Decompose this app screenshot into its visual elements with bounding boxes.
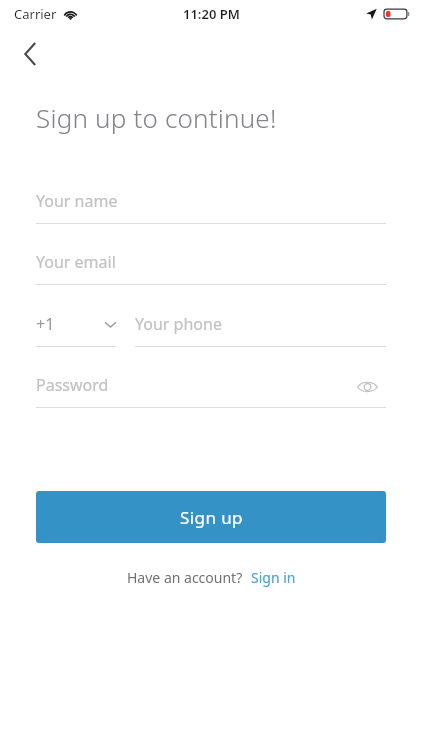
staticText: Sign up to continue! [36, 100, 277, 135]
staticText: +1 [36, 313, 55, 335]
button[interactable]: Sign up [36, 491, 386, 543]
button[interactable]: Your phone [135, 304, 386, 347]
staticText: 11:20 PM [183, 5, 240, 23]
staticText: Carrier [14, 5, 57, 23]
button[interactable]: +1 [36, 304, 116, 347]
staticText: Have an account? [127, 568, 243, 587]
staticText: Your name [36, 190, 118, 212]
staticText: Your email [36, 251, 116, 273]
button[interactable]: Show password [349, 365, 386, 408]
button[interactable]: Your email [36, 242, 386, 285]
staticText: Your phone [135, 313, 222, 335]
button[interactable]: Back [8, 32, 52, 76]
staticText: Sign up [180, 506, 243, 529]
staticText: Sign in [251, 568, 296, 587]
button[interactable]: Your name [36, 181, 386, 224]
button[interactable]: Password [36, 365, 386, 408]
button[interactable]: Sign in [251, 568, 296, 587]
staticText: Password [36, 374, 109, 396]
